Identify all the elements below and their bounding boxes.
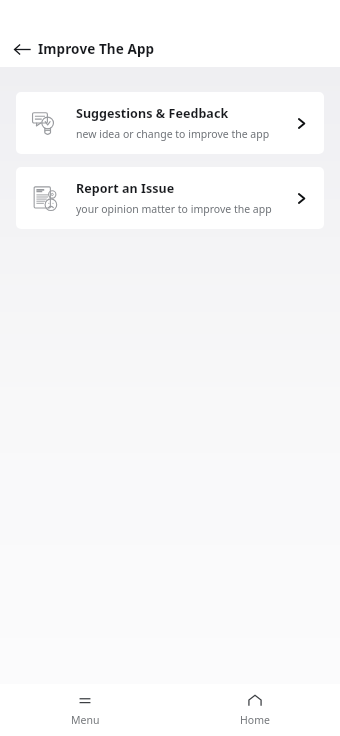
button[interactable]: Suggestions & Feedback <box>16 92 324 154</box>
staticText: Improve The App <box>38 40 155 58</box>
staticText: Menu <box>71 713 100 727</box>
button[interactable]: Home <box>170 684 340 736</box>
button[interactable]: Back <box>6 33 38 65</box>
other: Open <box>290 112 312 134</box>
button[interactable]: Menu <box>0 684 170 736</box>
staticText: your opinion matter to improve the app <box>76 202 272 216</box>
staticText: Report an Issue <box>76 180 175 197</box>
staticText: new idea or change to improve the app <box>76 127 270 141</box>
button[interactable]: Report an Issue <box>16 167 324 229</box>
staticText: Home <box>240 713 270 727</box>
staticText: Suggestions & Feedback <box>76 105 229 122</box>
other: Open <box>290 187 312 209</box>
